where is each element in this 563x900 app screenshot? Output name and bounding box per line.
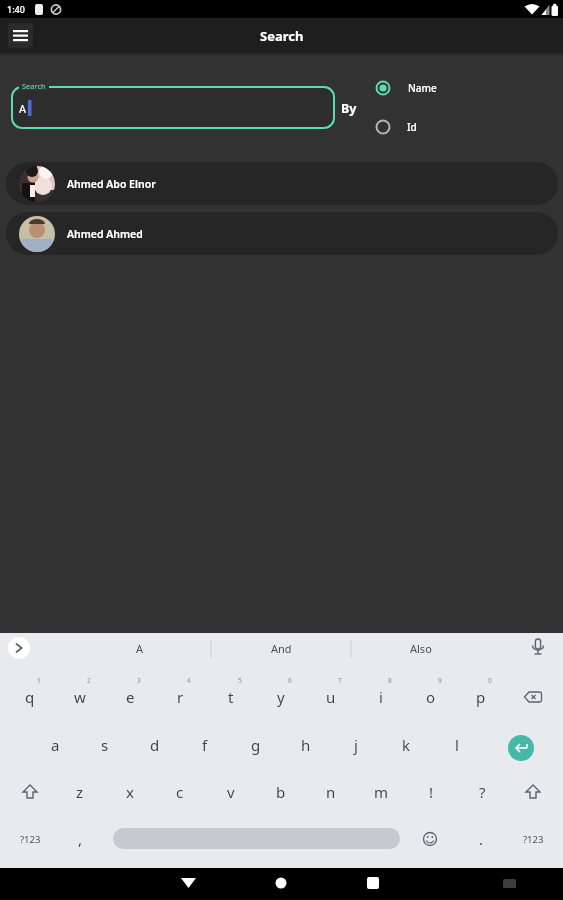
staticText: Search [260, 27, 304, 45]
button[interactable]: u [306, 675, 356, 719]
staticText: ?123 [20, 833, 41, 846]
staticText: A [136, 641, 144, 656]
staticText: v [227, 782, 235, 802]
button[interactable]: c [155, 770, 205, 814]
button[interactable] [370, 75, 450, 101]
staticText: u [326, 687, 336, 707]
staticText: Ahmed Abo Elnor [67, 177, 156, 191]
staticText: , [78, 829, 83, 849]
button[interactable] [260, 868, 302, 900]
staticText: 4 [187, 676, 191, 685]
button[interactable]: m [356, 770, 406, 814]
button[interactable]: f [180, 723, 230, 767]
staticText: Ahmed Ahmed [67, 227, 143, 241]
button[interactable] [113, 828, 400, 849]
button[interactable]: ! [406, 770, 456, 814]
button[interactable] [168, 868, 210, 900]
button[interactable]: And [236, 634, 326, 662]
button[interactable]: i [356, 675, 406, 719]
button[interactable]: , [55, 817, 105, 861]
button[interactable]: ? [457, 770, 507, 814]
staticText: Id [407, 120, 417, 134]
staticText: j [354, 735, 358, 755]
staticText: 3 [137, 676, 141, 685]
button[interactable]: Ahmed Ahmed [6, 212, 558, 255]
button[interactable]: k [381, 723, 431, 767]
button[interactable] [12, 87, 334, 128]
button[interactable]: q [5, 675, 55, 719]
button[interactable]: l [432, 723, 482, 767]
staticText: A [19, 101, 27, 116]
staticText: By [341, 100, 357, 117]
button[interactable] [512, 778, 554, 808]
staticText: m [374, 782, 389, 802]
staticText: i [379, 687, 383, 707]
staticText: n [326, 782, 336, 802]
button[interactable]: v [206, 770, 256, 814]
button[interactable] [8, 637, 30, 659]
staticText: w [74, 687, 86, 707]
staticText: e [126, 687, 135, 707]
staticText: c [176, 782, 184, 802]
staticText: 1:40 [7, 3, 25, 15]
staticText: d [150, 735, 160, 755]
button[interactable]: x [105, 770, 155, 814]
button[interactable]: o [406, 675, 456, 719]
button[interactable] [8, 23, 33, 48]
staticText: k [402, 735, 411, 755]
button[interactable] [508, 735, 534, 761]
button[interactable]: Also [376, 634, 466, 662]
staticText: x [126, 782, 134, 802]
staticText: b [276, 782, 286, 802]
button[interactable]: j [331, 723, 381, 767]
staticText: ! [429, 782, 434, 802]
button[interactable] [352, 868, 394, 900]
staticText: Name [408, 81, 437, 95]
button[interactable]: h [281, 723, 331, 767]
staticText: a [51, 735, 60, 755]
button[interactable]: s [80, 723, 130, 767]
staticText: q [25, 687, 35, 707]
staticText: Search [22, 81, 46, 91]
staticText: ?123 [523, 833, 544, 846]
button[interactable]: b [256, 770, 306, 814]
staticText: 1 [37, 676, 41, 685]
staticText: 0 [488, 676, 492, 685]
button[interactable]: n [306, 770, 356, 814]
button[interactable]: A [95, 634, 185, 662]
staticText: o [426, 687, 436, 707]
button[interactable]: . [456, 817, 506, 861]
button[interactable]: d [130, 723, 180, 767]
staticText: y [277, 687, 285, 707]
staticText: 5 [238, 676, 242, 685]
staticText: z [76, 782, 84, 802]
button[interactable] [370, 114, 450, 140]
staticText: r [177, 687, 184, 707]
button[interactable]: r [155, 675, 205, 719]
staticText: 6 [288, 676, 292, 685]
button[interactable]: w [55, 675, 105, 719]
button[interactable] [512, 683, 554, 713]
staticText: ? [479, 782, 486, 802]
staticText: 7 [338, 676, 342, 685]
staticText: . [479, 829, 484, 849]
staticText: s [101, 735, 109, 755]
button[interactable]: z [55, 770, 105, 814]
staticText: 9 [438, 676, 442, 685]
button[interactable]: a [30, 723, 80, 767]
button[interactable] [409, 824, 451, 854]
button[interactable]: ?123 [511, 824, 555, 854]
button[interactable]: ?123 [8, 824, 52, 854]
button[interactable]: t [206, 675, 256, 719]
button[interactable]: Ahmed Abo Elnor [6, 162, 558, 205]
staticText: h [301, 735, 311, 755]
button[interactable]: e [105, 675, 155, 719]
button[interactable]: p [456, 675, 506, 719]
button[interactable] [9, 778, 51, 808]
staticText: And [271, 641, 292, 656]
staticText: f [202, 735, 208, 755]
staticText: p [476, 687, 486, 707]
button[interactable]: g [231, 723, 281, 767]
staticText: 8 [388, 676, 392, 685]
button[interactable]: y [256, 675, 306, 719]
